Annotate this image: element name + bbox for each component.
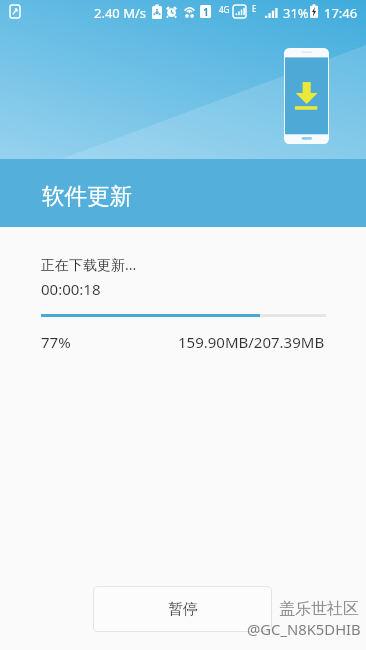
staticText: 31% xyxy=(283,4,309,22)
staticText: 159.90MB/207.39MB xyxy=(178,332,325,352)
staticText: 盖乐世社区 xyxy=(279,599,359,619)
staticText: 暂停 xyxy=(168,600,198,619)
staticText: 软件更新 xyxy=(42,182,132,210)
staticText: @GC_N8K5DHIB xyxy=(247,619,361,639)
staticText: 00:00:18 xyxy=(41,279,101,299)
button[interactable]: 暂停 xyxy=(93,586,272,632)
staticText: 17:46 xyxy=(324,4,358,22)
staticText: 4G xyxy=(219,4,230,15)
staticText: 2.40 M/s xyxy=(94,4,147,22)
staticText: 正在下载更新... xyxy=(41,255,137,274)
staticText: E xyxy=(252,3,257,14)
staticText: 77% xyxy=(41,332,71,352)
staticText: 1 xyxy=(203,5,209,18)
